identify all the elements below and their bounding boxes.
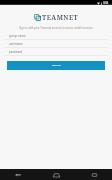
staticText: Sign in with your Teamnet account to acc… (8, 26, 104, 30)
staticText: username (9, 42, 23, 46)
button[interactable]: username (0, 41, 112, 49)
button[interactable]: Home (50, 169, 63, 180)
staticText: SIGN IN (52, 64, 61, 67)
button[interactable]: group name (0, 33, 112, 41)
staticText: group name (9, 34, 26, 38)
staticText: password (9, 50, 23, 54)
button[interactable]: Recents (88, 169, 101, 180)
button[interactable]: password (0, 49, 112, 57)
staticText: TEAMNET (42, 13, 79, 22)
button[interactable]: Back (11, 169, 24, 180)
staticText: 3:04 (103, 1, 109, 5)
button[interactable]: SIGN IN (7, 61, 105, 70)
